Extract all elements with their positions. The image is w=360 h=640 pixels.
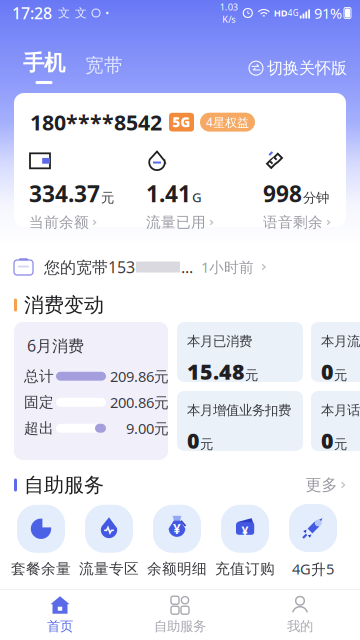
staticText: 998 xyxy=(263,178,302,208)
staticText: 流量专区 xyxy=(79,560,139,578)
staticText: 17:28 xyxy=(12,2,52,24)
button[interactable]: 手机 xyxy=(18,26,70,91)
button[interactable]: 首页 xyxy=(0,590,120,640)
staticText: 0 xyxy=(187,426,200,455)
staticText: 我的 xyxy=(287,618,313,635)
staticText: 宽带 xyxy=(85,54,123,77)
staticText: 流量已用 xyxy=(146,213,206,231)
button[interactable]: 4G升5 xyxy=(279,504,347,579)
button[interactable]: 本月已消费 xyxy=(177,322,303,382)
staticText: ... xyxy=(181,256,193,278)
staticText: 0 xyxy=(321,357,334,386)
staticText: 更多 xyxy=(305,475,337,495)
staticText: 0 xyxy=(321,426,334,455)
button[interactable]: 我的 xyxy=(240,590,360,640)
staticText: 9.00元 xyxy=(126,418,169,438)
button[interactable]: 宽带 xyxy=(80,19,128,91)
staticText: 元 xyxy=(200,436,213,453)
button[interactable]: 1.41 xyxy=(146,150,256,212)
staticText: 本月话费充值 xyxy=(321,402,360,418)
staticText: 6月消费 xyxy=(27,335,84,356)
staticText: 209.86元 xyxy=(110,366,169,386)
staticText: HD xyxy=(274,7,288,19)
staticText: 超出 xyxy=(24,419,54,437)
staticText: 余额明细 xyxy=(147,560,207,578)
staticText: 消费变动 xyxy=(24,293,104,317)
staticText: 当前余额 xyxy=(29,213,89,231)
staticText: 1.41 xyxy=(146,178,191,208)
staticText: 切换关怀版 xyxy=(267,58,347,78)
button[interactable]: 998 xyxy=(263,150,360,212)
button[interactable]: 本月话费充值 xyxy=(311,391,360,451)
staticText: K/s xyxy=(222,13,235,25)
staticText: 自助服务 xyxy=(24,473,104,497)
staticText: 4G xyxy=(288,7,299,18)
staticText: 本月已消费 xyxy=(187,333,252,349)
staticText: 5G xyxy=(172,113,190,131)
button[interactable]: 本月增值业务扣费 xyxy=(177,391,303,451)
button[interactable]: 自助服务 xyxy=(120,590,240,640)
staticText: 语音剩余 xyxy=(263,213,323,231)
staticText: 元 xyxy=(334,436,347,453)
staticText: 元 xyxy=(334,367,347,384)
staticText: 套餐余量 xyxy=(11,560,71,578)
staticText: 分钟 xyxy=(303,189,329,206)
staticText: 1小时前 xyxy=(201,257,254,277)
button[interactable]: ¥ xyxy=(143,505,211,578)
staticText: 文 xyxy=(75,6,87,20)
staticText: 180****8542 xyxy=(30,108,162,136)
staticText: 334.37 xyxy=(29,178,100,208)
staticText: 充值订购 xyxy=(215,560,275,578)
staticText: 本月增值业务扣费 xyxy=(187,402,291,418)
button[interactable]: ¥ xyxy=(211,505,279,578)
staticText: 您的宽带153 xyxy=(44,256,135,278)
staticText: 91% xyxy=(314,3,342,23)
staticText: 4G升5 xyxy=(292,559,334,579)
staticText: 元 xyxy=(245,367,258,384)
staticText: 元 xyxy=(101,189,114,206)
staticText: 文 xyxy=(58,6,70,20)
staticText: 4星权益 xyxy=(206,114,249,130)
button[interactable]: 切换关怀版 xyxy=(249,20,347,91)
button[interactable]: 本月流量费 xyxy=(311,322,360,382)
button[interactable]: 您的宽带153 xyxy=(0,246,360,288)
staticText: 自助服务 xyxy=(154,618,206,635)
button[interactable]: 套餐余量 xyxy=(7,505,75,578)
staticText: 1.03 xyxy=(220,1,238,13)
staticText: ¥ xyxy=(173,520,181,538)
button[interactable]: 更多 xyxy=(305,475,346,495)
staticText: G xyxy=(192,188,202,206)
staticText: 手机 xyxy=(23,50,65,76)
staticText: 本月流量费 xyxy=(321,333,360,349)
staticText: 200.86元 xyxy=(110,392,169,412)
button[interactable]: 流量专区 xyxy=(75,505,143,578)
staticText: 首页 xyxy=(47,618,73,635)
staticText: 固定 xyxy=(24,393,54,411)
staticText: 15.48 xyxy=(187,357,245,386)
button[interactable]: 334.37 xyxy=(29,150,139,212)
staticText: 总计 xyxy=(24,367,54,385)
staticText: ¥ xyxy=(241,523,248,539)
